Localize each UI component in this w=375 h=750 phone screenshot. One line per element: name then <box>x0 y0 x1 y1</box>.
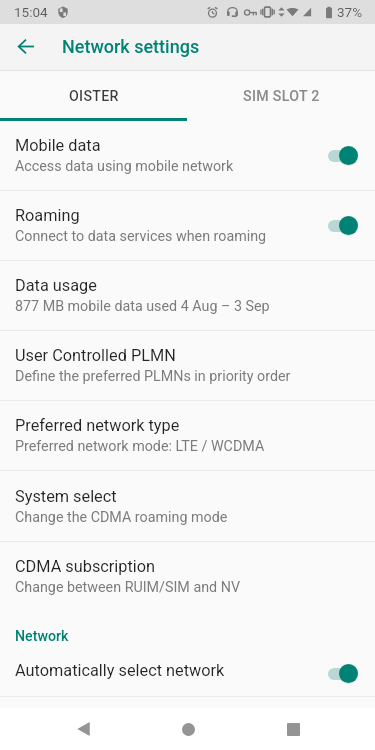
staticText: 877 MB mobile data used 4 Aug – 3 Sep <box>15 298 270 315</box>
button[interactable]: Back <box>0 24 50 70</box>
button[interactable]: Back <box>62 708 104 750</box>
button[interactable]: System select <box>0 471 375 541</box>
staticText: Change between RUIM/SIM and NV <box>15 579 240 596</box>
button[interactable]: User Controlled PLMN <box>0 331 375 400</box>
button[interactable]: Recent apps <box>272 708 314 750</box>
button[interactable]: Toggle <box>311 191 375 260</box>
button[interactable]: Automatically select network <box>0 650 375 696</box>
staticText: Data usage <box>15 276 97 295</box>
button[interactable]: CDMA subscription <box>0 542 375 611</box>
staticText: Preferred network type <box>15 416 180 435</box>
button[interactable]: Preferred network type <box>0 401 375 470</box>
button[interactable]: Home <box>167 708 209 750</box>
staticText: Mobile data <box>15 136 101 155</box>
staticText: 37% <box>337 4 363 20</box>
button[interactable]: Data usage <box>0 261 375 330</box>
button[interactable]: Roaming <box>0 191 375 260</box>
staticText: OISTER <box>69 88 119 105</box>
staticText: Access data using mobile network <box>15 158 234 175</box>
staticText: SIM SLOT 2 <box>243 88 320 105</box>
staticText: Connect to data services when roaming <box>15 228 267 245</box>
staticText: System select <box>15 487 117 506</box>
button[interactable]: SIM SLOT 2 <box>187 71 375 118</box>
staticText: Preferred network mode: LTE / WCDMA <box>15 438 265 455</box>
staticText: Automatically select network <box>15 661 225 680</box>
button[interactable]: OISTER <box>0 71 187 118</box>
staticText: Define the preferred PLMNs in priority o… <box>15 368 291 385</box>
button[interactable]: Toggle <box>311 121 375 190</box>
staticText: Network <box>15 628 69 645</box>
staticText: Network settings <box>62 36 200 57</box>
staticText: Change the CDMA roaming mode <box>15 509 228 526</box>
button[interactable]: Mobile data <box>0 121 375 190</box>
staticText: User Controlled PLMN <box>15 346 176 365</box>
staticText: 15:04 <box>14 4 48 20</box>
staticText: CDMA subscription <box>15 557 156 576</box>
button[interactable]: Toggle <box>311 650 375 696</box>
staticText: Roaming <box>15 206 80 225</box>
